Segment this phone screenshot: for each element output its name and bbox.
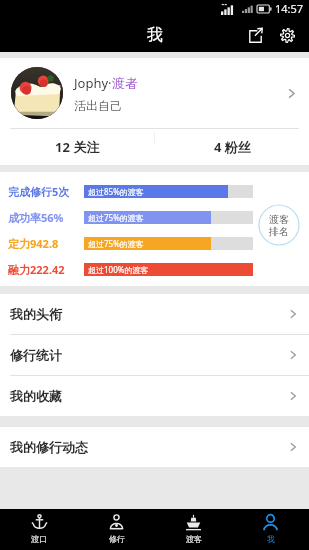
staticText: 活出自己 <box>74 98 122 113</box>
staticText: 超过75%的渡客 <box>88 212 144 223</box>
staticText: 我 <box>267 534 275 544</box>
button[interactable]: Jophy· <box>0 58 309 128</box>
button[interactable]: 我 <box>232 509 309 550</box>
button[interactable]: 12 关注 <box>0 129 155 165</box>
staticText: 定力942.8 <box>8 236 59 251</box>
button[interactable]: 修行统计 <box>0 335 309 375</box>
staticText: 完成修行5次 <box>8 184 70 199</box>
button[interactable]: 渡客 排名 <box>258 204 300 246</box>
staticText: 超过75%的渡客 <box>88 238 144 249</box>
staticText: 超过100%的渡客 <box>88 264 149 275</box>
button[interactable]: 4 粉丝 <box>155 129 309 165</box>
staticText: 14:57 <box>275 1 304 16</box>
staticText: 12 关注 <box>55 138 100 156</box>
button[interactable]: 我的头衔 <box>0 294 309 334</box>
button[interactable]: Share <box>241 21 269 49</box>
staticText: 渡客 <box>186 534 202 544</box>
button[interactable]: 渡口 <box>0 509 78 550</box>
staticText: 渡口 <box>31 534 47 544</box>
staticText: 渡客 排名 <box>269 213 289 238</box>
button[interactable]: Settings <box>273 21 301 49</box>
staticText: 修行 <box>109 534 125 544</box>
button[interactable]: 渡客 <box>155 509 232 550</box>
staticText: 我 <box>147 25 163 45</box>
button[interactable]: 修行 <box>78 509 155 550</box>
staticText: 我的头衔 <box>10 306 287 322</box>
staticText: 融力222.42 <box>8 262 65 277</box>
staticText: 修行统计 <box>10 347 287 363</box>
staticText: 成功率56% <box>8 210 64 225</box>
button[interactable]: 我的收藏 <box>0 376 309 416</box>
staticText: 4 粉丝 <box>214 138 251 156</box>
staticText: 我的修行动态 <box>10 439 287 455</box>
staticText: Jophy· <box>74 74 112 92</box>
staticText: 我的收藏 <box>10 388 287 404</box>
staticText: 超过85%的渡客 <box>88 186 144 197</box>
button[interactable]: 我的修行动态 <box>0 427 309 467</box>
staticText: 渡者 <box>112 75 138 91</box>
